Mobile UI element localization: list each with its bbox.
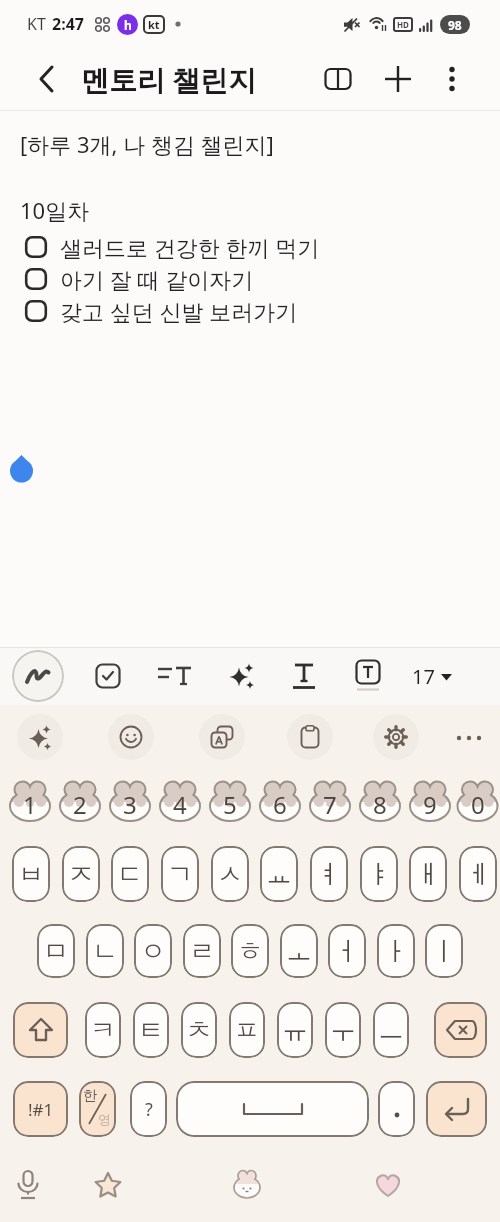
staticText: ㅊ bbox=[186, 1014, 212, 1047]
button[interactable]: ㅊ bbox=[181, 1002, 217, 1058]
button[interactable] bbox=[373, 714, 419, 760]
button[interactable] bbox=[93, 1170, 123, 1200]
button[interactable]: 갖고 싶던 신발 보러가기 bbox=[25, 295, 298, 327]
staticText: ㅡ bbox=[378, 1014, 404, 1047]
staticText: ㄱ bbox=[167, 858, 193, 891]
staticText: !#1 bbox=[28, 1098, 54, 1121]
staticText: 영 bbox=[98, 1111, 111, 1127]
button[interactable] bbox=[324, 67, 352, 91]
button[interactable]: 0 bbox=[455, 776, 500, 825]
button[interactable]: ㅛ bbox=[260, 846, 298, 902]
button[interactable]: ㅅ bbox=[211, 846, 249, 902]
button[interactable]: ㄷ bbox=[111, 846, 149, 902]
button[interactable] bbox=[291, 660, 317, 692]
button[interactable]: ㅠ bbox=[277, 1002, 313, 1058]
button[interactable] bbox=[232, 1170, 262, 1200]
button[interactable]: ㅍ bbox=[229, 1002, 265, 1058]
button[interactable] bbox=[385, 66, 411, 92]
button[interactable] bbox=[108, 714, 154, 760]
button[interactable] bbox=[455, 734, 483, 742]
button[interactable]: ㅐ bbox=[409, 846, 447, 902]
button[interactable] bbox=[176, 1081, 369, 1137]
button[interactable]: !#1 bbox=[13, 1081, 68, 1137]
button[interactable]: 3 bbox=[105, 776, 155, 825]
staticText: 5 bbox=[223, 788, 237, 821]
button[interactable] bbox=[378, 1081, 415, 1137]
button[interactable]: ㅜ bbox=[325, 1002, 361, 1058]
button[interactable]: ㅓ bbox=[328, 924, 366, 978]
button[interactable]: 아기 잘 때 같이자기 bbox=[25, 263, 254, 295]
button[interactable]: ㅁ bbox=[37, 924, 75, 978]
button[interactable]: ? bbox=[130, 1081, 167, 1137]
button[interactable] bbox=[449, 66, 455, 92]
button[interactable] bbox=[287, 714, 333, 760]
button[interactable]: 한 bbox=[79, 1081, 116, 1137]
button[interactable]: 7 bbox=[305, 776, 355, 825]
staticText: 2 bbox=[73, 788, 87, 821]
button[interactable] bbox=[12, 650, 64, 702]
button[interactable]: ㅈ bbox=[62, 846, 100, 902]
staticText: 한 bbox=[83, 1087, 97, 1105]
button[interactable] bbox=[95, 663, 121, 689]
staticText: 4 bbox=[173, 788, 187, 821]
button[interactable] bbox=[17, 714, 63, 760]
button[interactable] bbox=[13, 1170, 43, 1200]
button[interactable] bbox=[38, 65, 56, 93]
staticText: ㅗ bbox=[286, 935, 312, 968]
button[interactable]: ㅌ bbox=[133, 1002, 169, 1058]
button[interactable] bbox=[157, 658, 193, 694]
staticText: 샐러드로 건강한 한끼 먹기 bbox=[60, 232, 320, 262]
staticText: ㅓ bbox=[334, 935, 360, 968]
button[interactable] bbox=[426, 1081, 487, 1137]
button[interactable]: ㅏ bbox=[377, 924, 415, 978]
staticText: ㅁ bbox=[43, 935, 69, 968]
staticText: ㅠ bbox=[282, 1014, 308, 1047]
staticText: 17 bbox=[412, 663, 435, 690]
staticText: ? bbox=[145, 1097, 153, 1122]
button[interactable]: 샐러드로 건강한 한끼 먹기 bbox=[25, 231, 320, 263]
staticText: ㅋ bbox=[90, 1014, 116, 1047]
staticText: 3 bbox=[123, 788, 137, 821]
staticText: ㄷ bbox=[117, 858, 143, 891]
button[interactable]: ㄱ bbox=[161, 846, 199, 902]
staticText: ㄹ bbox=[189, 935, 215, 968]
button[interactable]: ㅣ bbox=[425, 924, 463, 978]
button[interactable]: ㅋ bbox=[85, 1002, 121, 1058]
button[interactable]: 8 bbox=[355, 776, 405, 825]
staticText: ㅍ bbox=[234, 1014, 260, 1047]
button[interactable]: 1 bbox=[5, 776, 55, 825]
button[interactable]: ㅇ bbox=[134, 924, 172, 978]
button[interactable]: ㅗ bbox=[280, 924, 318, 978]
button[interactable]: ㅡ bbox=[373, 1002, 409, 1058]
button[interactable]: 2 bbox=[55, 776, 105, 825]
staticText: 0 bbox=[471, 788, 485, 821]
button[interactable]: 5 bbox=[205, 776, 255, 825]
button[interactable]: ㅕ bbox=[310, 846, 348, 902]
button[interactable] bbox=[199, 714, 245, 760]
button[interactable] bbox=[226, 661, 256, 691]
button[interactable]: 9 bbox=[405, 776, 455, 825]
button[interactable]: ㅔ bbox=[459, 846, 497, 902]
staticText: ㅅ bbox=[217, 858, 243, 891]
staticText: ㅂ bbox=[18, 858, 44, 891]
staticText: 1 bbox=[23, 788, 37, 821]
staticText: ㅕ bbox=[316, 858, 342, 891]
staticText: ㅐ bbox=[415, 858, 441, 891]
button[interactable]: ㄹ bbox=[183, 924, 221, 978]
button[interactable]: 17 bbox=[412, 663, 452, 690]
button[interactable] bbox=[13, 1002, 68, 1058]
button[interactable] bbox=[355, 659, 381, 693]
button[interactable]: 4 bbox=[155, 776, 205, 825]
button[interactable]: 6 bbox=[255, 776, 305, 825]
button[interactable]: ㄴ bbox=[86, 924, 124, 978]
staticText: 아기 잘 때 같이자기 bbox=[60, 264, 254, 294]
button[interactable]: ㅑ bbox=[360, 846, 398, 902]
button[interactable]: ㅎ bbox=[231, 924, 269, 978]
button[interactable]: ㅂ bbox=[12, 846, 50, 902]
button[interactable] bbox=[434, 1002, 487, 1058]
staticText: 10일차 bbox=[20, 195, 90, 225]
staticText: h bbox=[124, 17, 132, 33]
button[interactable] bbox=[374, 1171, 402, 1199]
staticText: 멘토리 챌린지 bbox=[81, 60, 257, 98]
staticText: ㄴ bbox=[92, 935, 118, 968]
